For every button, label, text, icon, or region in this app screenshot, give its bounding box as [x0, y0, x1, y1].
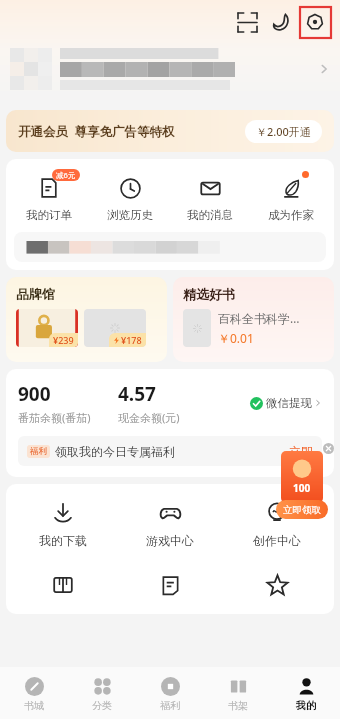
staticText: ¥239	[53, 334, 74, 346]
button[interactable]	[227, 570, 327, 600]
button[interactable]: 分类	[68, 667, 136, 719]
button[interactable]: 立即领取	[276, 500, 328, 519]
staticText: 书架	[228, 699, 248, 712]
button[interactable]: 900	[18, 381, 118, 425]
staticText: ¥178	[121, 334, 142, 346]
staticText: 我的	[296, 699, 316, 712]
staticText: 减6元	[56, 170, 76, 180]
button[interactable]: 微信提现	[250, 396, 322, 410]
button[interactable]: 减6元	[11, 171, 87, 224]
button[interactable]: Settings	[298, 5, 332, 39]
button[interactable]: Scan	[230, 5, 264, 39]
staticText: 领取我的今日专属福利	[55, 444, 175, 459]
staticText: 立即	[289, 444, 313, 459]
staticText: 福利	[30, 446, 47, 457]
button[interactable]: 我的下载	[13, 498, 113, 550]
button[interactable]: 书架	[204, 667, 272, 719]
staticText: 4.57	[118, 381, 156, 407]
staticText: 品牌馆	[16, 286, 55, 302]
staticText: 分类	[92, 699, 112, 712]
button[interactable]: 4.57	[118, 381, 250, 425]
button[interactable]: 品牌馆	[6, 277, 167, 362]
staticText: 番茄余额(番茄)	[18, 410, 91, 425]
staticText: 书城	[24, 699, 44, 712]
staticText: 百科全书科学…	[218, 310, 300, 326]
staticText: ￥2.00开通	[256, 124, 311, 139]
button[interactable]: 成为作家	[253, 171, 329, 224]
button[interactable]: Night mode	[264, 5, 298, 39]
button[interactable]	[120, 570, 220, 600]
staticText: 创作中心	[253, 533, 301, 548]
button[interactable]: 浏览历史	[92, 171, 168, 224]
button[interactable]	[13, 570, 113, 600]
staticText: ￥0.01	[218, 330, 254, 346]
button[interactable]: Close	[323, 443, 334, 454]
button[interactable]: 开通会员 尊享免广告等特权	[6, 110, 334, 152]
staticText: 100	[293, 481, 311, 495]
button[interactable]: 100	[281, 451, 323, 503]
button[interactable]: 游戏中心	[120, 498, 220, 550]
button[interactable]: 我的	[272, 667, 340, 719]
button[interactable]: 书城	[0, 667, 68, 719]
staticText: 立即领取	[283, 504, 321, 516]
button[interactable]: 精选好书	[173, 277, 334, 362]
staticText: 我的下载	[39, 533, 87, 548]
staticText: 900	[18, 381, 51, 407]
staticText: 我的消息	[187, 208, 233, 222]
staticText: 游戏中心	[146, 533, 194, 548]
button[interactable]	[0, 44, 340, 94]
button[interactable]: 创作中心	[227, 498, 327, 550]
staticText: 福利	[160, 699, 180, 712]
staticText: 我的订单	[26, 208, 72, 222]
staticText: 浏览历史	[107, 208, 153, 222]
staticText: 成为作家	[268, 208, 314, 222]
staticText: 开通会员 尊享免广告等特权	[18, 123, 175, 140]
staticText: 现金余额(元)	[118, 410, 180, 425]
button[interactable]: 福利	[18, 436, 322, 466]
staticText: 微信提现	[266, 396, 312, 410]
button[interactable]: 福利	[136, 667, 204, 719]
button[interactable]: 我的消息	[172, 171, 248, 224]
button[interactable]	[14, 232, 326, 262]
staticText: 精选好书	[183, 286, 235, 302]
